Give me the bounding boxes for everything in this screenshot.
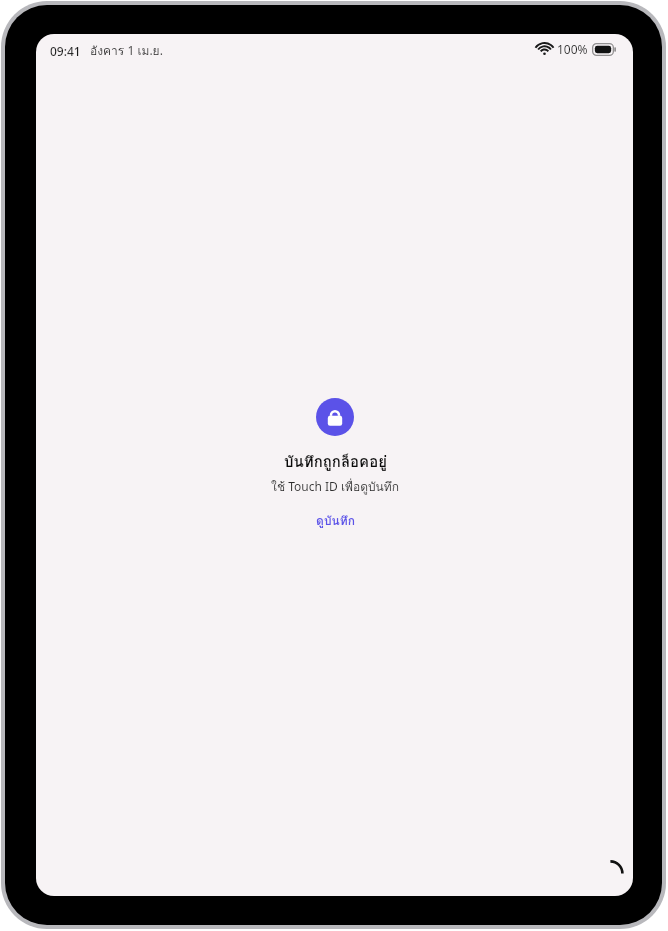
staticText: 09:41: [50, 43, 81, 59]
staticText: อังคาร 1 เม.ย.: [90, 41, 163, 60]
other: Locked: [316, 398, 354, 436]
staticText: บันทึกถูกล็อคอยู่: [284, 450, 387, 474]
staticText: 100%: [557, 41, 588, 57]
staticText: ใช้ Touch ID เพื่อดูบันทึก: [271, 477, 399, 496]
button[interactable]: ดูบันทึก: [306, 508, 365, 533]
staticText: ดูบันทึก: [316, 511, 355, 530]
